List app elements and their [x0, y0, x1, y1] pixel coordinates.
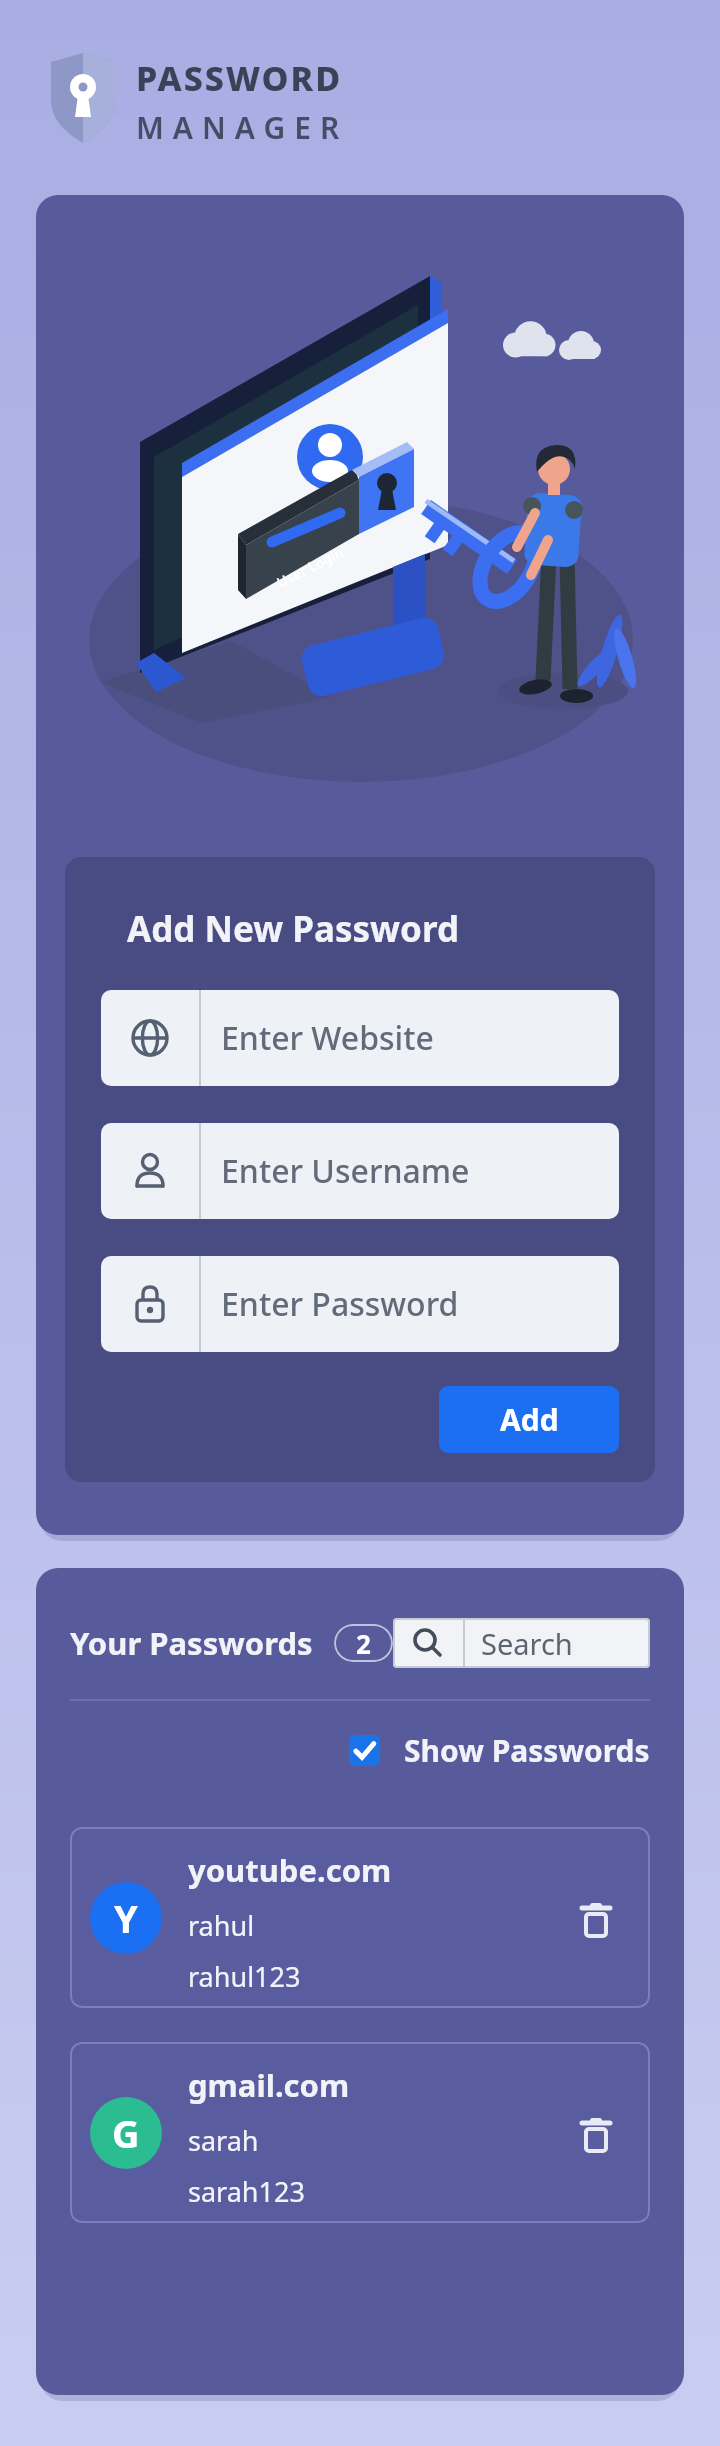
button[interactable] — [572, 1894, 620, 1942]
staticText: sarah — [188, 2122, 259, 2159]
staticText: sarah123 — [188, 2173, 305, 2210]
button[interactable]: Add — [439, 1386, 619, 1453]
button[interactable] — [572, 2109, 620, 2157]
staticText: rahul123 — [188, 1958, 301, 1995]
staticText: Y — [114, 1892, 138, 1944]
staticText: Enter Website — [221, 1016, 434, 1060]
staticText: Add — [500, 1399, 559, 1440]
staticText: gmail.com — [188, 2064, 350, 2106]
staticText: 2 — [356, 1626, 371, 1661]
button[interactable]: Y — [70, 1827, 650, 2008]
staticText: MANAGER — [136, 107, 349, 148]
staticText: rahul — [188, 1907, 255, 1944]
button[interactable]: Search — [393, 1618, 650, 1668]
staticText: Add New Password — [127, 905, 460, 953]
staticText: Enter Username — [221, 1149, 470, 1193]
staticText: Search — [481, 1624, 573, 1663]
staticText: Show Passwords — [404, 1730, 650, 1771]
button[interactable]: G — [70, 2042, 650, 2223]
staticText: PASSWORD — [136, 55, 343, 101]
staticText: Your Passwords — [70, 1622, 313, 1664]
staticText: Enter Password — [221, 1282, 459, 1326]
staticText: youtube.com — [188, 1849, 392, 1891]
button[interactable]: Enter Username — [101, 1123, 619, 1219]
staticText: G — [112, 2107, 140, 2159]
button[interactable]: Show Passwords — [349, 1730, 650, 1771]
button[interactable]: Enter Password — [101, 1256, 619, 1352]
button[interactable]: Enter Website — [101, 990, 619, 1086]
